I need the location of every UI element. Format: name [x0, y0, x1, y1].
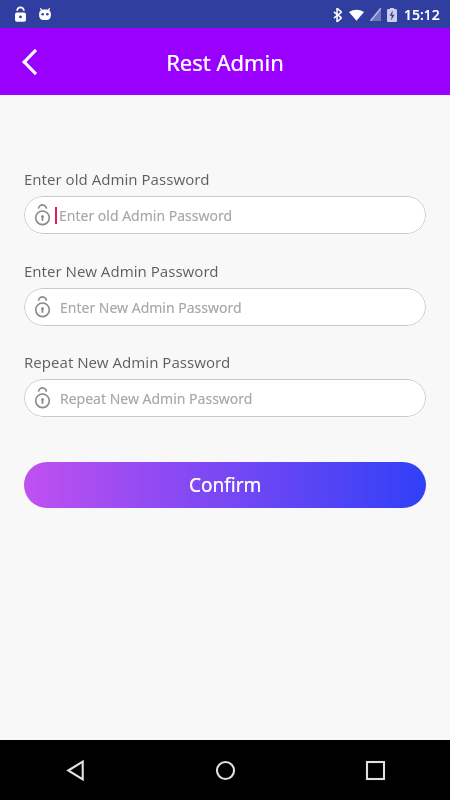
button[interactable]: Recent apps — [300, 740, 450, 800]
button[interactable]: Back — [6, 39, 52, 85]
staticText: Enter old Admin Password — [59, 206, 233, 225]
button[interactable]: Home — [150, 740, 300, 800]
staticText: Repeat New Admin Password — [60, 389, 253, 408]
button[interactable]: Enter old Admin Password — [24, 196, 426, 234]
button[interactable]: Enter New Admin Password — [24, 288, 426, 326]
button[interactable]: Confirm — [24, 462, 426, 508]
staticText: Rest Admin — [166, 47, 284, 77]
button[interactable]: Repeat New Admin Password — [24, 379, 426, 417]
button[interactable]: Back — [0, 740, 150, 800]
staticText: 15:12 — [404, 5, 440, 24]
staticText: Enter New Admin Password — [60, 298, 242, 317]
staticText: Repeat New Admin Password — [24, 352, 231, 372]
staticText: Confirm — [189, 472, 262, 498]
staticText: Enter old Admin Password — [24, 169, 210, 189]
staticText: Enter New Admin Password — [24, 261, 219, 281]
